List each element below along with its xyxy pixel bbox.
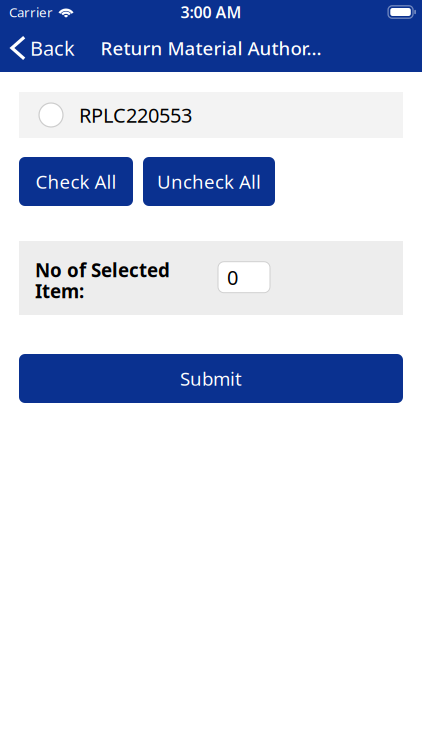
button[interactable]: Submit [19,354,403,403]
staticText: 3:00 AM [180,1,241,23]
button[interactable]: RPLC220553 [19,92,403,138]
button[interactable]: Back [0,25,83,71]
staticText: 0 [227,264,238,290]
button[interactable]: Uncheck All [143,157,275,206]
staticText: RPLC220553 [79,102,192,128]
button[interactable]: 0 [218,262,270,293]
staticText: Uncheck All [157,169,261,194]
staticText: No of Selected Item: [35,258,170,303]
staticText: Submit [180,366,242,391]
staticText: Carrier [9,3,53,21]
button[interactable]: Check All [19,157,133,206]
staticText: Check All [35,169,116,194]
staticText: Return Material Author... [100,36,321,60]
staticText: Back [30,35,75,61]
